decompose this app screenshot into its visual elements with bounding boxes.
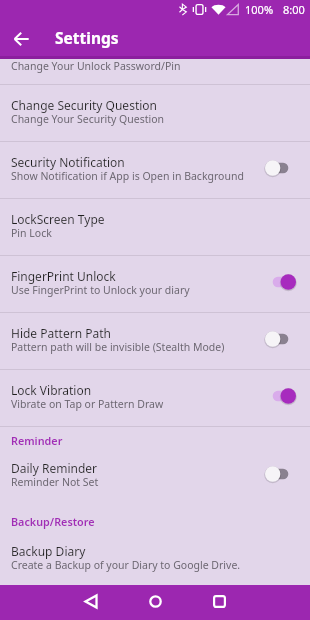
button[interactable]: Change Your Unlock Password/Pin: [0, 59, 310, 84]
button[interactable]: Toggle: [265, 156, 296, 180]
button[interactable]: Daily Reminder: [0, 448, 310, 504]
button[interactable]: Change Security Question: [0, 85, 310, 141]
staticText: Vibrate on Tap or Pattern Draw: [11, 397, 164, 411]
staticText: Backup/Restore: [11, 514, 95, 529]
staticText: LockScreen Type: [11, 211, 105, 227]
button[interactable]: Backup Diary: [0, 531, 310, 587]
staticText: Reminder: [11, 433, 63, 448]
staticText: Create a Backup of your Diary to Google …: [11, 558, 241, 572]
staticText: Show Notification if App is Open in Back…: [11, 169, 244, 183]
staticText: FingerPrint Unlock: [11, 268, 116, 284]
staticText: Change Your Unlock Password/Pin: [11, 59, 181, 73]
staticText: Backup Diary: [11, 543, 86, 559]
staticText: Pattern path will be invisible (Stealth …: [11, 340, 225, 354]
staticText: Hide Pattern Path: [11, 325, 111, 341]
staticText: Pin Lock: [11, 226, 52, 240]
button[interactable]: Toggle: [265, 327, 296, 351]
staticText: 100%: [245, 2, 274, 17]
staticText: Security Notification: [11, 154, 125, 170]
staticText: Lock Vibration: [11, 382, 92, 398]
button[interactable]: Security Notification: [0, 142, 310, 198]
staticText: Use FingerPrint to Unlock your diary: [11, 283, 190, 297]
button[interactable]: FingerPrint Unlock: [0, 256, 310, 312]
button[interactable]: Toggle: [265, 270, 296, 294]
button[interactable]: LockScreen Type: [0, 199, 310, 255]
button[interactable]: Lock Vibration: [0, 370, 310, 426]
staticText: Daily Reminder: [11, 460, 97, 476]
button[interactable]: Back: [0, 17, 43, 57]
staticText: Change Security Question: [11, 97, 157, 113]
button[interactable]: Toggle: [265, 462, 296, 486]
staticText: Change Your Security Question: [11, 112, 165, 126]
button[interactable]: Hide Pattern Path: [0, 313, 310, 369]
staticText: 8:00: [283, 2, 305, 17]
button[interactable]: Back: [77, 587, 105, 615]
button[interactable]: Toggle: [265, 384, 296, 408]
button[interactable]: Recents: [205, 587, 233, 615]
button[interactable]: Home: [141, 587, 169, 615]
staticText: Reminder Not Set: [11, 475, 99, 489]
staticText: Settings: [55, 27, 119, 48]
